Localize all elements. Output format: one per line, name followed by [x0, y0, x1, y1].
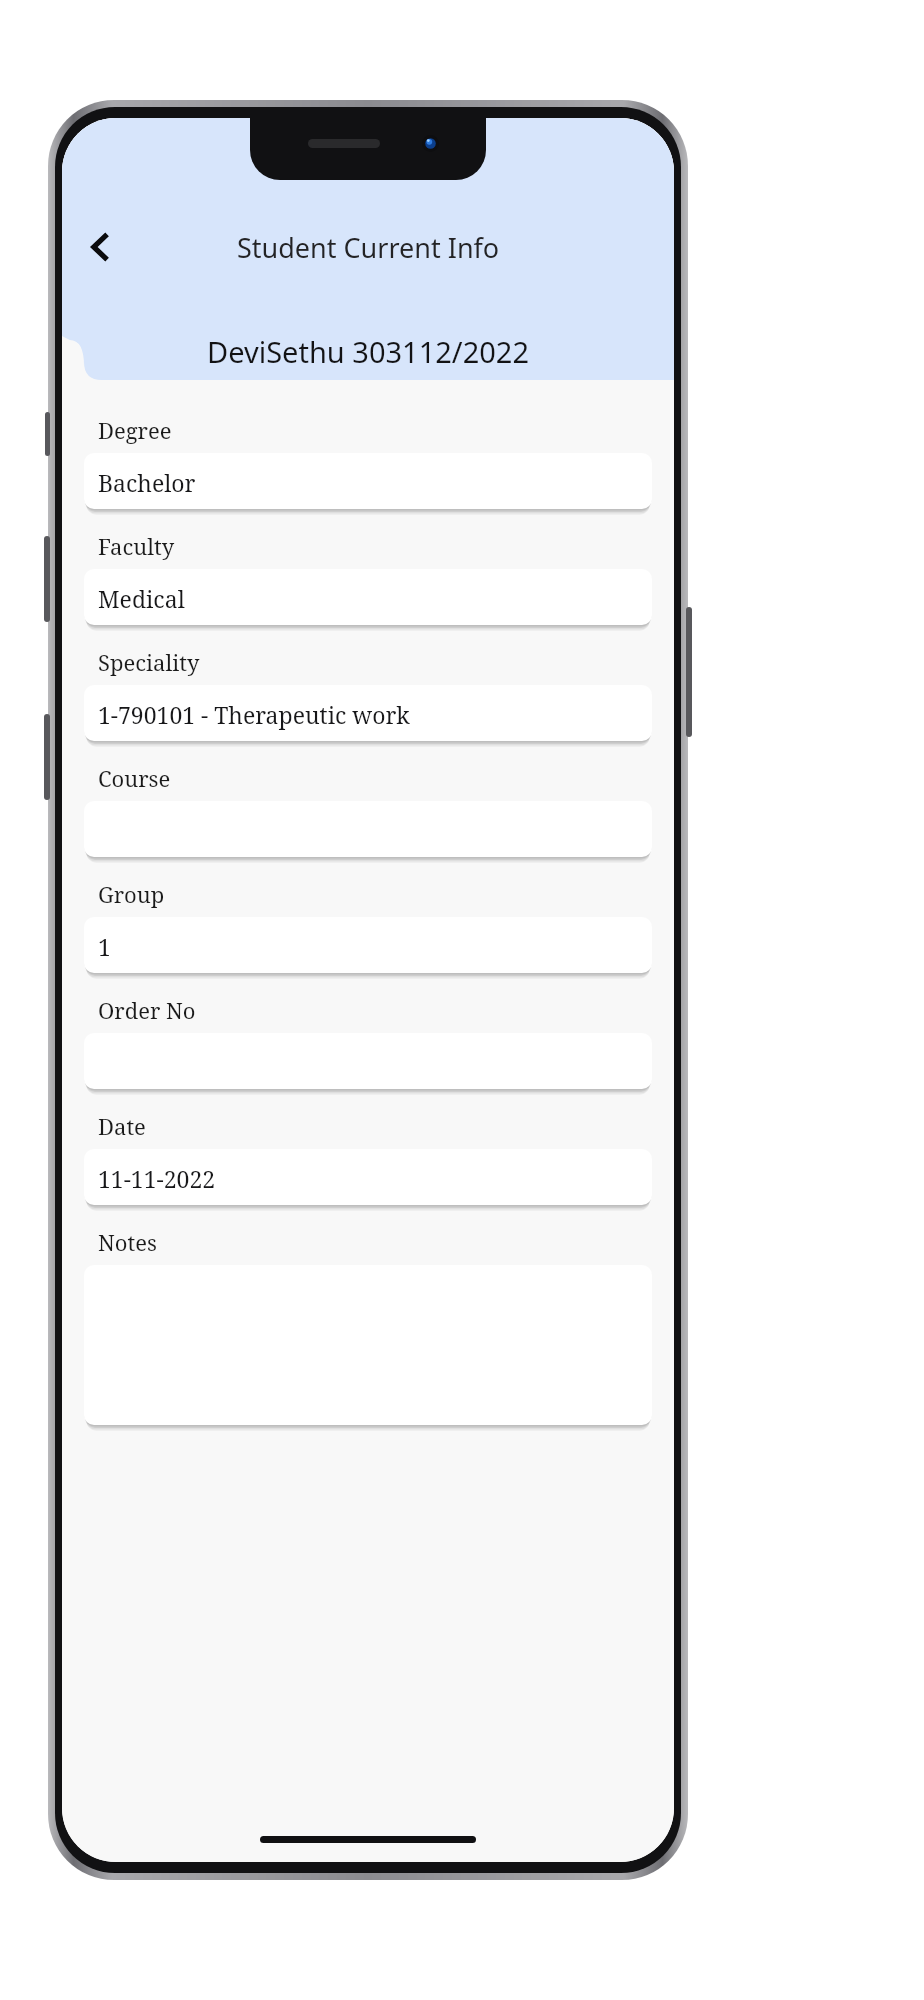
staticText: Group: [98, 879, 165, 909]
staticText: Date: [98, 1111, 146, 1141]
staticText: Speciality: [98, 647, 200, 677]
button[interactable]: 1-790101 - Therapeutic work: [84, 685, 652, 741]
button[interactable]: 1: [84, 917, 652, 973]
staticText: Student Current Info: [237, 229, 500, 266]
staticText: 1: [98, 931, 111, 962]
staticText: 1-790101 - Therapeutic work: [98, 699, 410, 730]
staticText: Bachelor: [98, 467, 196, 498]
staticText: Order No: [98, 995, 196, 1025]
button[interactable]: Medical: [84, 569, 652, 625]
staticText: Degree: [98, 415, 172, 445]
staticText: Course: [98, 763, 171, 793]
staticText: Notes: [98, 1227, 157, 1257]
staticText: DeviSethu 303112/2022: [207, 332, 529, 371]
button[interactable]: 11-11-2022: [84, 1149, 652, 1205]
staticText: Faculty: [98, 531, 175, 561]
button[interactable]: Back: [72, 219, 128, 275]
staticText: 11-11-2022: [98, 1163, 216, 1194]
staticText: Medical: [98, 583, 185, 614]
button[interactable]: Bachelor: [84, 453, 652, 509]
